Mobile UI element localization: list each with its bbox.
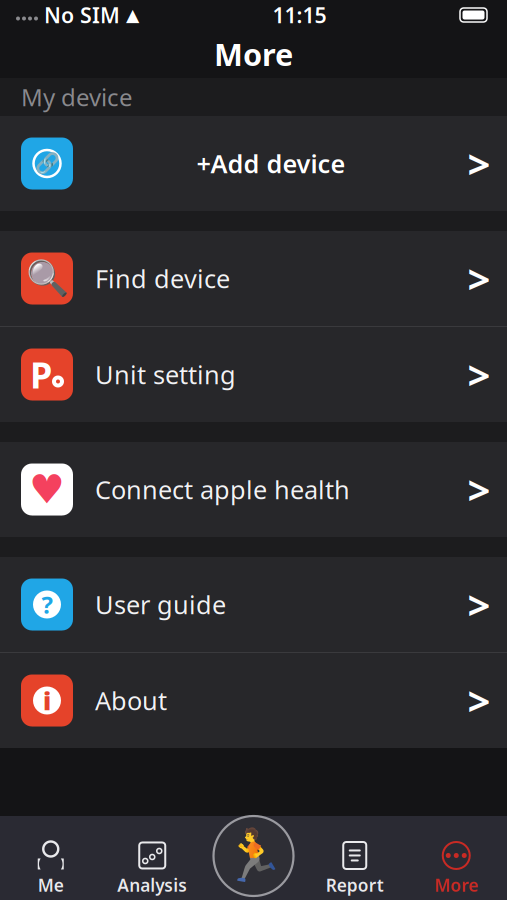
button[interactable]: Me xyxy=(0,838,101,900)
staticText: Find device xyxy=(95,262,230,295)
staticText: Unit setting xyxy=(95,358,236,391)
staticText: Connect apple health xyxy=(95,473,350,506)
staticText: More xyxy=(434,873,478,896)
staticText: > xyxy=(467,252,490,305)
button[interactable]: Report xyxy=(304,838,405,900)
staticText: About xyxy=(95,684,167,717)
button[interactable]: ♥ xyxy=(0,442,507,537)
staticText: > xyxy=(467,137,490,190)
button[interactable]: i xyxy=(0,653,507,748)
staticText: > xyxy=(467,348,490,401)
staticText: 🔍 xyxy=(25,259,68,298)
staticText: ▲ xyxy=(126,5,139,25)
button[interactable]: Start workout xyxy=(213,816,293,900)
button[interactable]: ? xyxy=(0,557,507,652)
staticText: > xyxy=(467,674,490,727)
staticText: ♥ xyxy=(29,467,65,512)
staticText: No SIM xyxy=(44,1,120,29)
staticText: Me xyxy=(38,873,64,896)
button[interactable]: 🔍 xyxy=(0,231,507,326)
staticText: > xyxy=(467,578,490,631)
staticText: > xyxy=(467,463,490,516)
staticText: i xyxy=(43,684,51,717)
staticText: +Add device xyxy=(196,147,345,180)
staticText: Analysis xyxy=(117,873,187,896)
staticText: 🔗 xyxy=(34,152,59,175)
button[interactable]: Analysis xyxy=(101,838,203,900)
button[interactable]: 🔗 xyxy=(0,116,507,211)
staticText: More xyxy=(214,34,293,74)
staticText: Report xyxy=(326,873,384,896)
staticText: ? xyxy=(41,589,52,620)
staticText: 11:15 xyxy=(272,1,326,29)
button[interactable]: More xyxy=(405,838,507,900)
staticText: My device xyxy=(21,81,133,113)
staticText: User guide xyxy=(95,588,226,621)
button[interactable]: P xyxy=(0,327,507,422)
staticText: 🏃 xyxy=(222,827,285,885)
staticText: P xyxy=(30,351,52,398)
